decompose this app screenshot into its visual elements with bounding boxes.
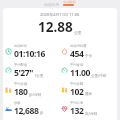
staticText: 11.00	[70, 67, 90, 79]
staticText: 千卡	[85, 54, 93, 59]
staticText: 步	[40, 111, 44, 116]
staticText: 平均配速	[14, 63, 28, 67]
staticText: /公里	[35, 73, 44, 78]
staticText: 180	[14, 86, 28, 98]
staticText: 平均步频	[14, 82, 28, 86]
staticText: 平均心率	[70, 101, 84, 105]
staticText: 12.88	[38, 18, 73, 36]
staticText: 步/分钟	[29, 92, 42, 97]
staticText: 5'27"	[14, 67, 34, 79]
staticText: 运动时长	[14, 44, 28, 48]
button[interactable]: 步数	[5, 101, 61, 118]
staticText: 步数	[14, 101, 21, 105]
button[interactable]: 运动消耗量	[61, 44, 115, 61]
button[interactable]: 运动时长	[5, 44, 61, 61]
staticText: 102	[70, 86, 84, 98]
button[interactable]: 平均配速	[5, 63, 61, 80]
button[interactable]: 平均步幅	[61, 82, 115, 99]
staticText: 01:10:16	[14, 48, 45, 60]
staticText: 运动记录	[44, 2, 60, 7]
staticText: 运动消耗量	[70, 44, 87, 48]
staticText: 平均步幅	[70, 82, 84, 86]
staticText: 本周数据	[63, 0, 76, 4]
button[interactable]: 平均速度	[61, 63, 115, 80]
staticText: 公里/小时	[91, 73, 107, 78]
staticText: 平均速度	[70, 63, 84, 67]
staticText: 132	[70, 105, 84, 117]
staticText: 2020年4月11日 11:06	[40, 12, 80, 17]
staticText: 次/分钟	[85, 111, 98, 116]
staticText: 12,688	[14, 105, 39, 117]
staticText: 公里	[74, 30, 82, 35]
button[interactable]: 平均心率	[61, 101, 115, 118]
staticText: 454	[70, 48, 84, 60]
button[interactable]: 平均步频	[5, 82, 61, 99]
staticText: 厘米	[85, 92, 93, 97]
